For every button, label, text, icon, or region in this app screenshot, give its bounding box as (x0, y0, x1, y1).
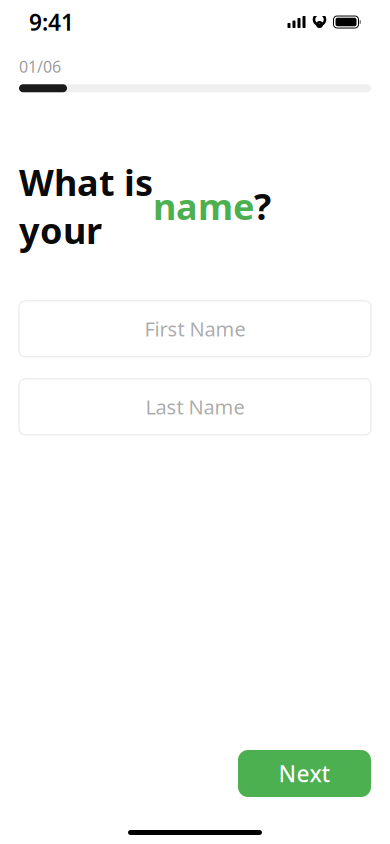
staticText: name (153, 182, 254, 230)
button[interactable]: Last Name (19, 379, 371, 435)
staticText: Last Name (145, 394, 244, 420)
button[interactable]: Next (238, 750, 371, 797)
staticText: 01/06 (19, 56, 61, 77)
staticText: ? (254, 182, 271, 230)
staticText: First Name (144, 316, 245, 342)
staticText: Next (278, 758, 330, 788)
button[interactable]: First Name (19, 301, 371, 357)
staticText: 9:41 (29, 7, 74, 37)
staticText: What is your (19, 158, 153, 254)
